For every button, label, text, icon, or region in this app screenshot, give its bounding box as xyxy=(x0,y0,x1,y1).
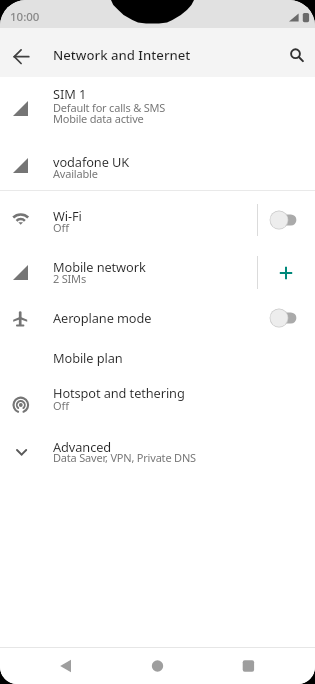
staticText: Mobile network xyxy=(53,258,146,275)
button[interactable]: Mobile network xyxy=(0,246,315,298)
staticText: 2 SIMs xyxy=(53,271,86,286)
staticText: Default for calls & SMS Mobile data acti… xyxy=(53,100,166,126)
button[interactable]: Wi-Fi xyxy=(0,191,315,246)
button[interactable]: vodafone UK xyxy=(0,137,315,190)
staticText: Mobile plan xyxy=(53,349,123,366)
staticText: Wi-Fi xyxy=(53,207,82,224)
button[interactable] xyxy=(140,649,174,683)
staticText: Aeroplane mode xyxy=(53,309,152,326)
staticText: vodafone UK xyxy=(53,153,130,170)
staticText: Hotspot and tethering xyxy=(53,384,185,401)
staticText: Available xyxy=(53,166,98,181)
button[interactable] xyxy=(7,42,36,71)
staticText: Advanced xyxy=(53,438,112,455)
button[interactable]: Advanced xyxy=(0,424,315,480)
button[interactable] xyxy=(49,649,83,683)
staticText: SIM 1 xyxy=(53,85,87,102)
staticText: Data Saver, VPN, Private DNS xyxy=(53,450,196,465)
button[interactable] xyxy=(283,41,312,70)
staticText: 10:00 xyxy=(10,9,40,25)
button[interactable] xyxy=(269,304,305,332)
button[interactable]: SIM 1 xyxy=(0,77,315,137)
button[interactable] xyxy=(269,206,305,234)
button[interactable]: Aeroplane mode xyxy=(0,298,315,340)
button[interactable]: Mobile plan xyxy=(0,340,315,376)
button[interactable]: Hotspot and tethering xyxy=(0,376,315,424)
staticText: Off xyxy=(53,398,69,413)
button[interactable] xyxy=(231,649,265,683)
button[interactable] xyxy=(272,259,300,287)
staticText: Network and Internet xyxy=(53,46,191,64)
staticText: Off xyxy=(53,220,69,235)
